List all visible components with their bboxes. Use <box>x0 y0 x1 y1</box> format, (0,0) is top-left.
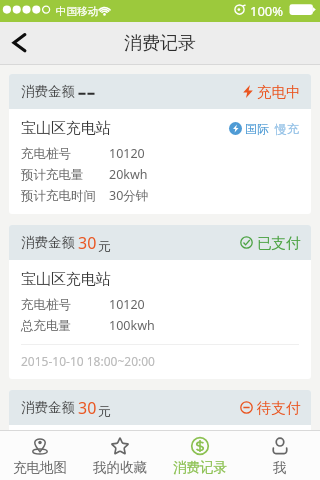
button[interactable]: 消费金额 <box>9 225 311 379</box>
staticText: 20kwh <box>109 166 148 183</box>
staticText: 消费金额 <box>21 234 75 251</box>
staticText: 宝山区充电站 <box>21 435 111 454</box>
staticText: 预计充电量 <box>21 167 84 183</box>
staticText: 已支付 <box>257 234 301 252</box>
button[interactable]: 消费记录 <box>160 430 240 480</box>
staticText: 消费记录 <box>124 32 196 55</box>
staticText: 30 <box>78 232 97 254</box>
staticText: 元 <box>98 238 111 254</box>
staticText: 充电桩号 <box>21 146 71 162</box>
staticText: 元 <box>98 403 111 419</box>
staticText: 充电中 <box>257 83 301 101</box>
staticText: 慢充 <box>275 121 299 136</box>
button[interactable]: 消费金额 <box>9 390 311 480</box>
button[interactable]: 我 <box>240 430 320 480</box>
staticText: 充电桩号 <box>21 462 71 478</box>
staticText: 30分钟 <box>109 187 149 204</box>
staticText: 我的收藏 <box>93 459 147 476</box>
staticText: 宝山区充电站 <box>21 119 111 138</box>
staticText: 预计充电时间 <box>21 188 96 204</box>
staticText: 100kwh <box>109 317 155 334</box>
staticText: 国际 <box>245 121 269 136</box>
staticText: 中国移动 <box>56 5 98 18</box>
staticText: 消费金额 <box>21 399 75 416</box>
staticText: 2015-10-10 18:00~20:00 <box>21 353 155 369</box>
button[interactable]: 充电地图 <box>0 430 80 480</box>
staticText: 消费金额 <box>21 83 75 100</box>
staticText: 10120 <box>109 145 145 162</box>
staticText: 10120 <box>109 461 145 478</box>
button[interactable]: 消费金额 <box>9 74 311 214</box>
staticText: 30 <box>78 397 97 419</box>
staticText: 宝山区充电站 <box>21 270 111 289</box>
button[interactable]: 我的收藏 <box>80 430 160 480</box>
button[interactable]: Back <box>0 22 38 65</box>
staticText: 我 <box>273 459 287 476</box>
staticText: 待支付 <box>257 399 301 417</box>
staticText: 10120 <box>109 296 145 313</box>
staticText: 充电地图 <box>13 459 67 476</box>
staticText: 100% <box>250 2 284 20</box>
staticText: 总充电量 <box>21 318 71 334</box>
staticText: 消费记录 <box>173 459 227 476</box>
staticText: 充电桩号 <box>21 297 71 313</box>
